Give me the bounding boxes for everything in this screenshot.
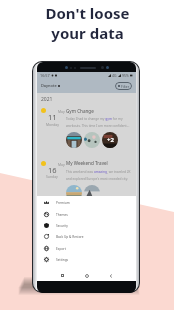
staticText: Gym Change [66,108,94,114]
staticText: May [58,109,65,114]
staticText: 11 [48,112,57,122]
button[interactable]: Premium [37,197,136,208]
staticText: Daynote [41,83,57,88]
staticText: My Weekend Travel [66,160,108,166]
button[interactable]: Back [106,271,115,280]
button[interactable]: Home [82,271,91,280]
button[interactable]: Filter [115,82,132,90]
staticText: Don't loose your data [45,3,130,43]
staticText: Settings [56,258,69,262]
staticText: 95% [122,73,129,78]
button[interactable]: Recents [58,271,67,280]
staticText: Export [56,247,66,251]
button[interactable]: Export [37,243,136,254]
staticText: Premium [56,201,70,205]
staticText: Filter [121,84,130,89]
button[interactable]: Themes [37,209,136,220]
staticText: Back Up & Restore [56,235,84,239]
staticText: 16:57 [40,73,50,78]
staticText: This weekend was amazing, we traveled 2K… [66,170,134,180]
staticText: +2 [107,136,114,144]
button[interactable]: Daynote [41,83,60,88]
staticText: 4G [112,73,117,78]
staticText: 16 [48,165,57,175]
staticText: Today I had to change my gym for my work… [66,117,134,127]
staticText: May [58,162,65,167]
button[interactable]: Settings [37,254,136,265]
button[interactable]: Security [37,220,136,231]
staticText: 2021 [41,96,53,103]
staticText: Themes [56,213,68,217]
button[interactable]: Back Up & Restore [37,231,136,242]
staticText: Security [56,224,68,228]
staticText: Monday [46,122,59,127]
staticText: Sunday [46,174,58,179]
